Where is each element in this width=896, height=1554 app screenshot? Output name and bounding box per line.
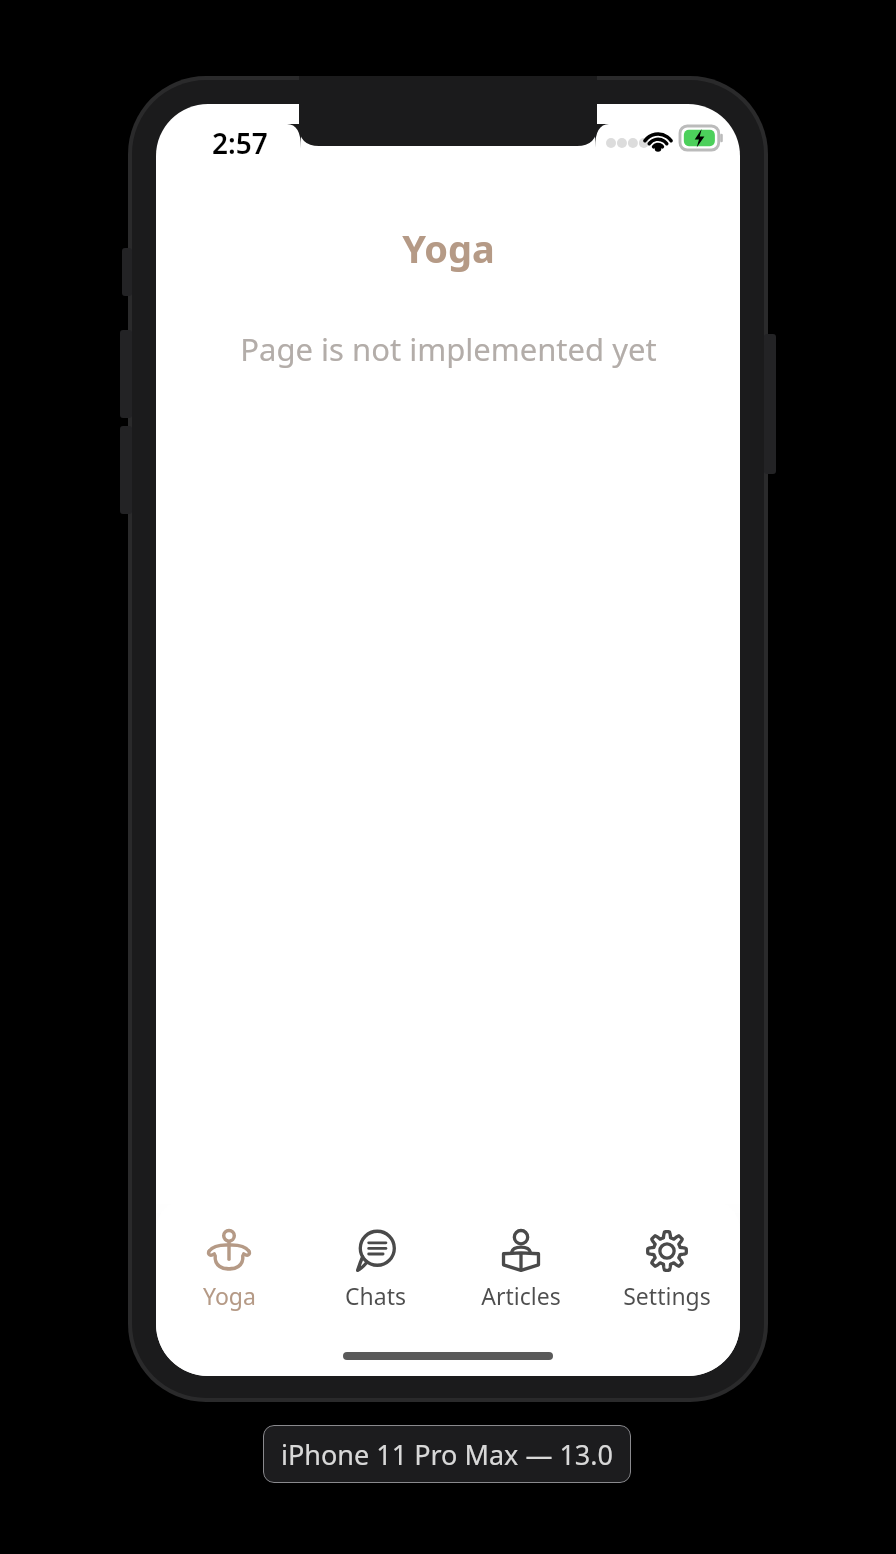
staticText: Yoga: [203, 1280, 256, 1311]
button[interactable]: Chats: [302, 1222, 448, 1317]
staticText: 2:57: [212, 124, 268, 162]
other: Yoga: [206, 1228, 252, 1274]
other: Settings: [644, 1228, 690, 1274]
staticText: Yoga: [402, 222, 495, 274]
button[interactable]: Settings: [594, 1222, 740, 1317]
other: Chats: [352, 1228, 398, 1274]
staticText: Page is not implemented yet: [240, 328, 657, 370]
other: Articles: [498, 1228, 544, 1274]
staticText: Articles: [481, 1280, 561, 1311]
button[interactable]: Articles: [448, 1222, 594, 1317]
staticText: Settings: [623, 1280, 711, 1311]
button[interactable]: Yoga: [156, 1222, 302, 1317]
staticText: Chats: [345, 1280, 406, 1311]
staticText: iPhone 11 Pro Max — 13.0: [281, 1436, 613, 1473]
